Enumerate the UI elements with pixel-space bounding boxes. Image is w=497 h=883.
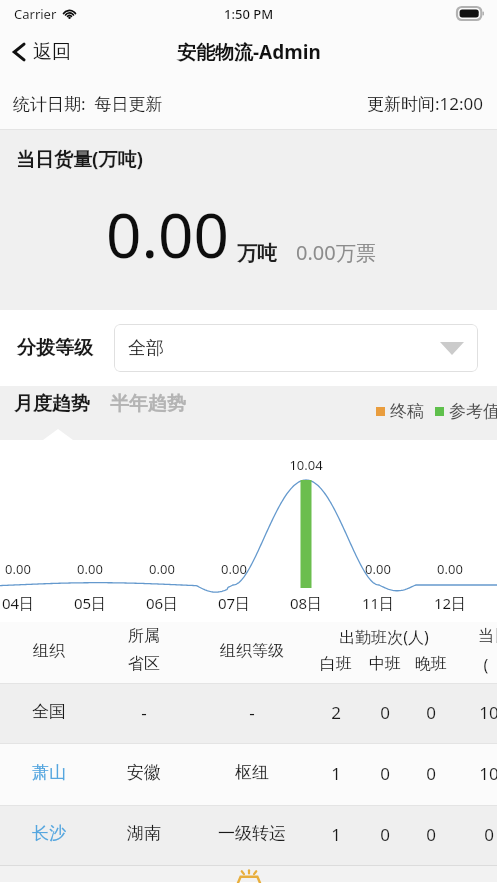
staticText: 晚班 [371, 654, 491, 674]
staticText: 全国 [0, 701, 109, 722]
staticText: 省区 [84, 654, 204, 674]
staticText: 07日 [206, 593, 262, 613]
staticText: 0 [371, 762, 491, 785]
staticText: 0 [325, 701, 445, 724]
staticText: 返回 [33, 40, 71, 64]
staticText: Carrier [14, 5, 57, 23]
staticText: 10.04 [282, 456, 330, 474]
button[interactable]: 全部 [114, 324, 478, 372]
staticText: 0.00万票 [296, 239, 376, 266]
button[interactable]: 全国 [0, 684, 497, 743]
staticText: 0 [325, 762, 445, 785]
button[interactable]: 萧山 [0, 744, 497, 805]
staticText: 终稿 [390, 401, 424, 422]
other: Navigation bar [0, 865, 497, 882]
staticText: 0 [371, 701, 491, 724]
staticText: 月度趋势 [14, 392, 90, 416]
staticText: 10 [429, 762, 497, 785]
staticText: 0 [429, 823, 497, 846]
staticText: 全部 [128, 337, 164, 360]
staticText: 半年趋势 [110, 392, 186, 416]
staticText: 0.00 [0, 560, 42, 578]
staticText: 安徽 [84, 762, 204, 783]
staticText: 0.00 [426, 560, 474, 578]
staticText: 所属 [84, 626, 204, 646]
staticText: 长沙 [0, 823, 109, 844]
staticText: 湖南 [84, 823, 204, 844]
staticText: 一级转运 [192, 823, 312, 844]
staticText: 更新时间:12:00 [367, 92, 484, 115]
staticText: 12日 [422, 593, 478, 613]
staticText: 统计日期: 每日更新 [13, 92, 163, 115]
staticText: 11日 [350, 593, 406, 613]
button[interactable]: Home [221, 866, 277, 882]
staticText: 1 [276, 823, 396, 846]
staticText: ( [426, 654, 497, 676]
staticText: 参考值 [449, 401, 497, 422]
staticText: 0.00 [210, 560, 258, 578]
staticText: 2 [276, 701, 396, 724]
staticText: 0 [325, 823, 445, 846]
button[interactable]: Back [0, 34, 81, 70]
staticText: 枢纽 [192, 762, 312, 783]
staticText: 0.00 [354, 560, 402, 578]
staticText: 1 [276, 762, 396, 785]
staticText: 分拨等级 [17, 336, 93, 360]
staticText: 05日 [62, 593, 118, 613]
staticText: 白班 [276, 654, 396, 674]
staticText: 0.00 [138, 560, 186, 578]
staticText: 0.00 [66, 560, 114, 578]
staticText: 萧山 [0, 762, 109, 783]
staticText: 0.00 [106, 192, 230, 276]
staticText: 10 [429, 701, 497, 724]
staticText: 当日 [434, 626, 497, 646]
staticText: - [84, 701, 204, 724]
staticText: 中班 [325, 654, 445, 674]
staticText: 04日 [0, 593, 46, 613]
staticText: 组织 [0, 641, 109, 661]
staticText: - [192, 701, 312, 724]
staticText: 组织等级 [192, 641, 312, 661]
staticText: 出勤班次(人) [324, 626, 444, 648]
button[interactable]: 长沙 [0, 806, 497, 865]
button[interactable]: 半年趋势 [110, 392, 186, 416]
staticText: 安能物流-Admin [177, 39, 321, 65]
staticText: 08日 [278, 593, 334, 613]
staticText: 1:50 PM [224, 5, 274, 23]
button[interactable]: 月度趋势 [14, 392, 90, 416]
staticText: 06日 [134, 593, 190, 613]
staticText: 万吨 [237, 241, 277, 266]
staticText: 当日货量(万吨) [16, 146, 143, 172]
staticText: 0 [371, 823, 491, 846]
